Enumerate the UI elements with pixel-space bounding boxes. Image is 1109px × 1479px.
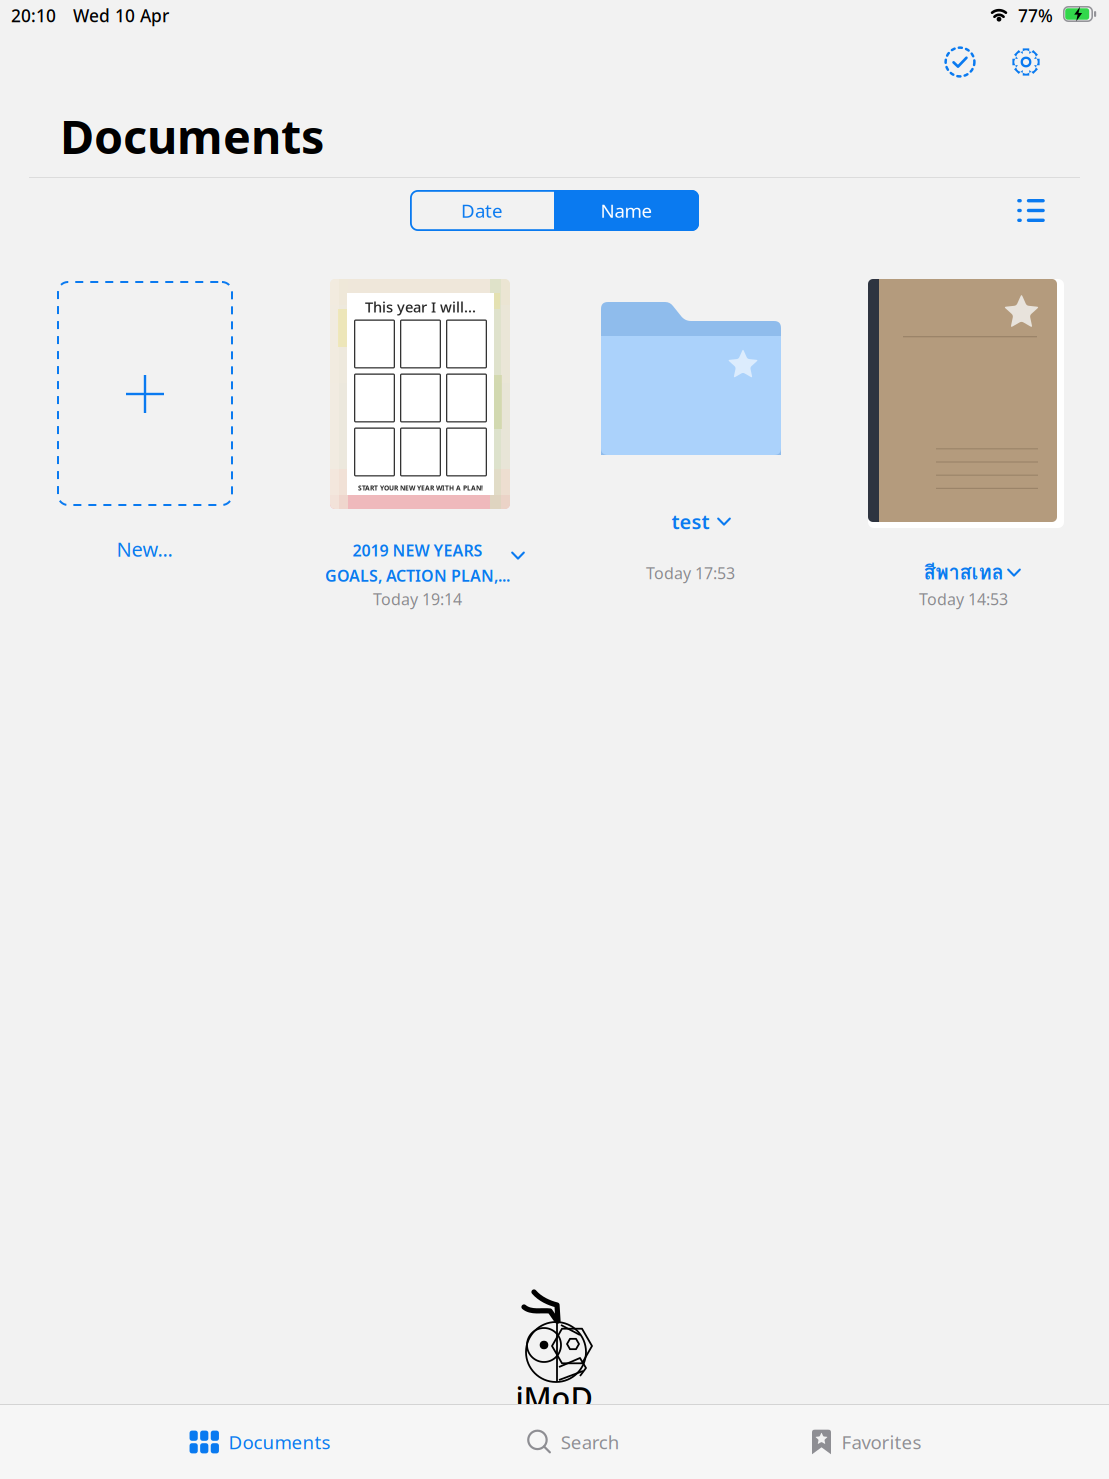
button[interactable]: Search: [370, 1405, 740, 1479]
staticText: Today 14:53: [919, 588, 1008, 610]
button[interactable]: Documents: [0, 1405, 370, 1479]
staticText: Today 19:14: [373, 588, 462, 610]
staticText: This year I will...: [365, 297, 476, 316]
staticText: Date: [461, 198, 503, 223]
button[interactable]: [868, 279, 1064, 528]
button[interactable]: [601, 302, 781, 455]
staticText: Wed 10 Apr: [73, 4, 169, 27]
staticText: 20:10: [11, 4, 56, 27]
button[interactable]: New...: [8, 536, 281, 562]
button[interactable]: Name: [554, 190, 699, 231]
button[interactable]: Settings: [1002, 38, 1050, 86]
button[interactable]: Date: [410, 190, 554, 231]
staticText: GOALS, ACTION PLAN,...: [325, 565, 510, 586]
staticText: New...: [116, 536, 172, 562]
button[interactable]: สีพาสเทล: [827, 560, 1100, 585]
staticText: START YOUR NEW YEAR WITH A PLAN!: [358, 483, 483, 492]
staticText: 77%: [1018, 4, 1053, 27]
button[interactable]: This year I will...: [330, 279, 510, 509]
button[interactable]: 2019 NEW YEARS: [281, 541, 554, 585]
button[interactable]: [57, 281, 233, 506]
button[interactable]: test: [554, 509, 827, 534]
staticText: 2019 NEW YEARS: [352, 540, 482, 561]
staticText: Documents: [60, 105, 324, 167]
staticText: iMoD: [515, 1377, 592, 1418]
staticText: Today 17:53: [646, 562, 735, 584]
staticText: Favorites: [841, 1430, 921, 1454]
staticText: สีพาสเทล: [923, 557, 1003, 588]
button[interactable]: Favorites: [740, 1405, 1109, 1479]
staticText: Search: [561, 1430, 620, 1454]
staticText: Documents: [228, 1430, 330, 1454]
staticText: test: [671, 508, 709, 535]
button[interactable]: Select: [936, 38, 984, 86]
button[interactable]: List view: [1017, 199, 1045, 222]
staticText: Name: [600, 198, 652, 223]
